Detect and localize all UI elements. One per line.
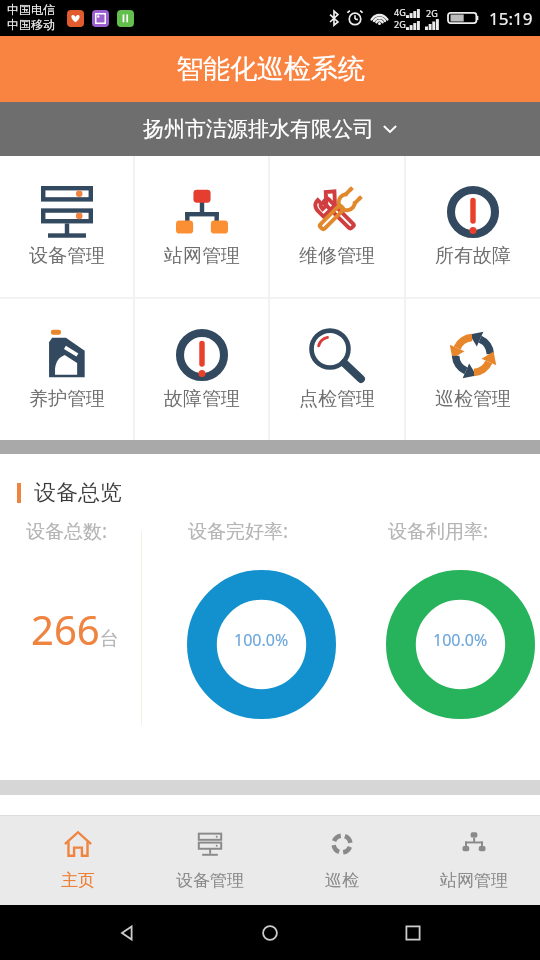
- staticText: 266: [31, 602, 100, 656]
- staticText: 100.0%: [433, 629, 488, 651]
- staticText: 所有故障: [435, 244, 511, 268]
- staticText: 100.0%: [234, 629, 289, 651]
- staticText: 主页: [61, 870, 95, 891]
- staticText: 台: [100, 627, 119, 651]
- staticText: 2G: [394, 18, 406, 30]
- staticText: 4G: [394, 6, 406, 18]
- staticText: 故障管理: [164, 387, 240, 411]
- button[interactable]: Home: [255, 918, 285, 948]
- button[interactable]: Back: [113, 918, 143, 948]
- button[interactable]: Recents: [398, 918, 428, 948]
- staticText: 智能化巡检系统: [176, 52, 365, 86]
- staticText: 中国电信: [7, 2, 55, 17]
- staticText: 设备管理: [176, 870, 244, 891]
- staticText: 站网管理: [440, 870, 508, 891]
- button[interactable]: 站网管理: [408, 816, 540, 905]
- button[interactable]: 巡检管理: [406, 299, 540, 440]
- button[interactable]: 扬州市洁源排水有限公司: [0, 102, 540, 156]
- button[interactable]: 养护管理: [0, 299, 133, 440]
- staticText: 巡检: [325, 870, 359, 891]
- staticText: 设备完好率:: [188, 518, 289, 544]
- staticText: 设备总数:: [26, 518, 108, 544]
- button[interactable]: 故障管理: [135, 299, 268, 440]
- staticText: 15:19: [489, 7, 533, 30]
- staticText: 站网管理: [164, 244, 240, 268]
- staticText: 2G: [426, 7, 438, 19]
- staticText: 巡检管理: [435, 387, 511, 411]
- staticText: 设备总览: [34, 479, 122, 507]
- staticText: 扬州市洁源排水有限公司: [143, 116, 374, 142]
- button[interactable]: 站网管理: [135, 156, 268, 297]
- staticText: 中国移动: [7, 17, 55, 32]
- button[interactable]: 所有故障: [406, 156, 540, 297]
- staticText: 养护管理: [29, 387, 105, 411]
- staticText: 设备管理: [29, 244, 105, 268]
- button[interactable]: 维修管理: [270, 156, 404, 297]
- button[interactable]: 设备管理: [0, 156, 133, 297]
- staticText: 维修管理: [299, 244, 375, 268]
- staticText: 设备利用率:: [388, 518, 489, 544]
- button[interactable]: 巡检: [276, 816, 408, 905]
- button[interactable]: 设备管理: [144, 816, 276, 905]
- button[interactable]: 主页: [12, 816, 144, 905]
- staticText: 点检管理: [299, 387, 375, 411]
- button[interactable]: 点检管理: [270, 299, 404, 440]
